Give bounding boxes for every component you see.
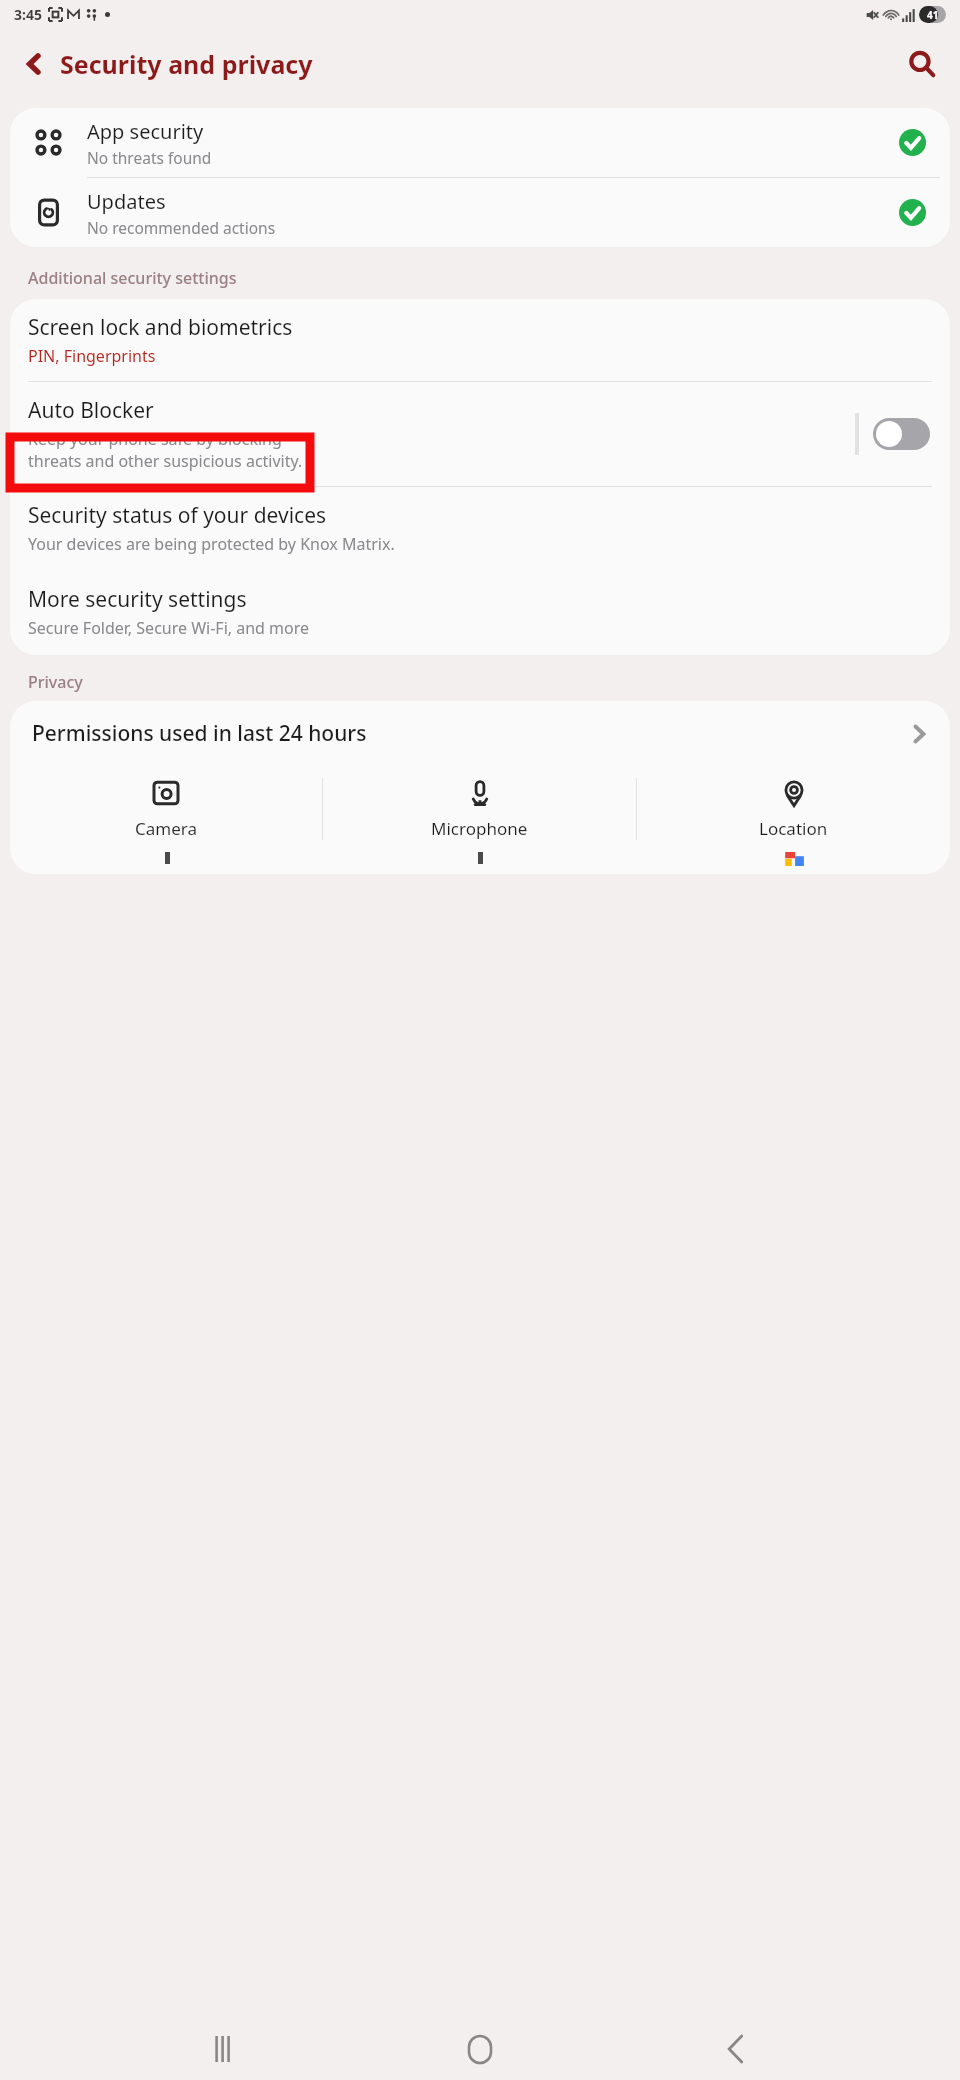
button[interactable]: Search <box>898 40 946 88</box>
button[interactable]: Auto Blocker toggle <box>873 418 930 450</box>
staticText: 41 <box>927 8 939 22</box>
button[interactable]: Microphone <box>323 772 636 846</box>
staticText: Updates <box>87 188 166 215</box>
staticText: Secure Folder, Secure Wi-Fi, and more <box>28 617 310 639</box>
staticText: Screen lock and biometrics <box>28 313 293 342</box>
staticText: Keep your phone safe by blocking threats… <box>28 428 303 472</box>
staticText: No recommended actions <box>87 217 276 238</box>
button[interactable]: Security status of your devices <box>10 487 950 569</box>
staticText: Auto Blocker <box>28 396 154 425</box>
button[interactable]: App security <box>10 108 950 177</box>
button[interactable]: More security settings <box>10 569 950 655</box>
staticText: Location <box>759 817 828 840</box>
staticText: Security status of your devices <box>28 501 327 530</box>
staticText: Security and privacy <box>60 47 313 81</box>
staticText: App security <box>87 118 204 145</box>
button[interactable]: Back <box>10 40 58 88</box>
button[interactable]: Permissions used in last 24 hours <box>10 701 950 762</box>
button[interactable]: Screen lock and biometrics <box>10 299 950 381</box>
button[interactable]: Updates <box>10 178 950 247</box>
staticText: No threats found <box>87 147 212 168</box>
button[interactable]: Location <box>637 772 950 846</box>
staticText: Permissions used in last 24 hours <box>32 719 908 748</box>
button[interactable]: Recent apps <box>192 2018 256 2080</box>
staticText: Microphone <box>431 817 528 840</box>
staticText: PIN, Fingerprints <box>28 345 156 367</box>
staticText: Additional security settings <box>28 267 237 289</box>
button[interactable]: Auto Blocker <box>10 382 950 486</box>
button[interactable]: Home <box>448 2018 512 2080</box>
staticText: 3:45 <box>14 5 42 24</box>
staticText: Camera <box>135 817 197 840</box>
staticText: Privacy <box>28 671 83 693</box>
button[interactable]: Back <box>704 2018 768 2080</box>
staticText: More security settings <box>28 585 247 614</box>
staticText: Your devices are being protected by Knox… <box>28 533 395 555</box>
button[interactable]: Camera <box>10 772 322 846</box>
